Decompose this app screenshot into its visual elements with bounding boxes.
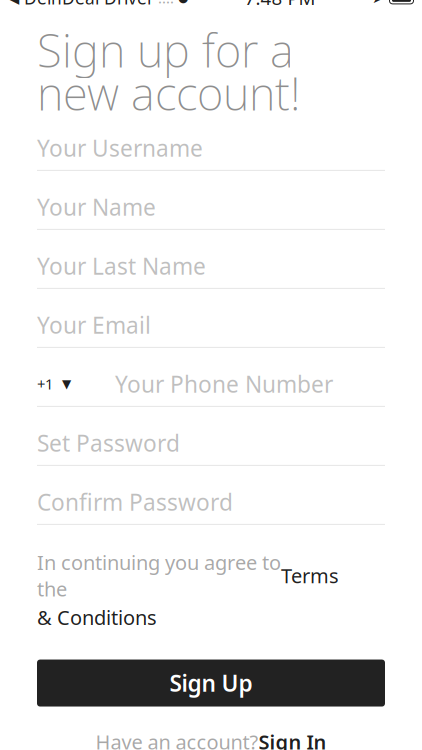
staticText: .... bbox=[154, 0, 174, 8]
button[interactable]: Sign Up bbox=[37, 660, 385, 707]
staticText: Your Name bbox=[37, 192, 156, 222]
staticText: Sign Up bbox=[169, 668, 252, 698]
button[interactable]: In continuing you agree to the bbox=[0, 525, 422, 631]
staticText: ● bbox=[174, 0, 188, 5]
staticText: Your Username bbox=[37, 133, 203, 163]
staticText: DeinDeal Driver bbox=[19, 0, 154, 9]
staticText: Sign up for a bbox=[37, 20, 294, 80]
staticText: Confirm Password bbox=[37, 487, 233, 517]
staticText: In continuing you agree to the bbox=[37, 549, 281, 602]
staticText: ➤ bbox=[372, 0, 384, 6]
staticText: Terms bbox=[281, 562, 339, 589]
staticText: & Conditions bbox=[37, 604, 157, 631]
staticText: Your Phone Number bbox=[115, 369, 333, 399]
staticText: Sign In bbox=[258, 729, 326, 750]
staticText: 7:48 PM bbox=[244, 0, 315, 10]
staticText: Have an account? bbox=[95, 729, 258, 750]
staticText: new account! bbox=[37, 63, 301, 123]
staticText: ▼ bbox=[62, 377, 71, 391]
staticText: ◀ bbox=[8, 0, 19, 6]
staticText: +1 bbox=[37, 374, 53, 394]
staticText: Set Password bbox=[37, 428, 180, 458]
button[interactable]: Have an account? bbox=[0, 707, 422, 750]
staticText: Your Last Name bbox=[37, 251, 206, 281]
staticText: Your Email bbox=[37, 310, 151, 340]
